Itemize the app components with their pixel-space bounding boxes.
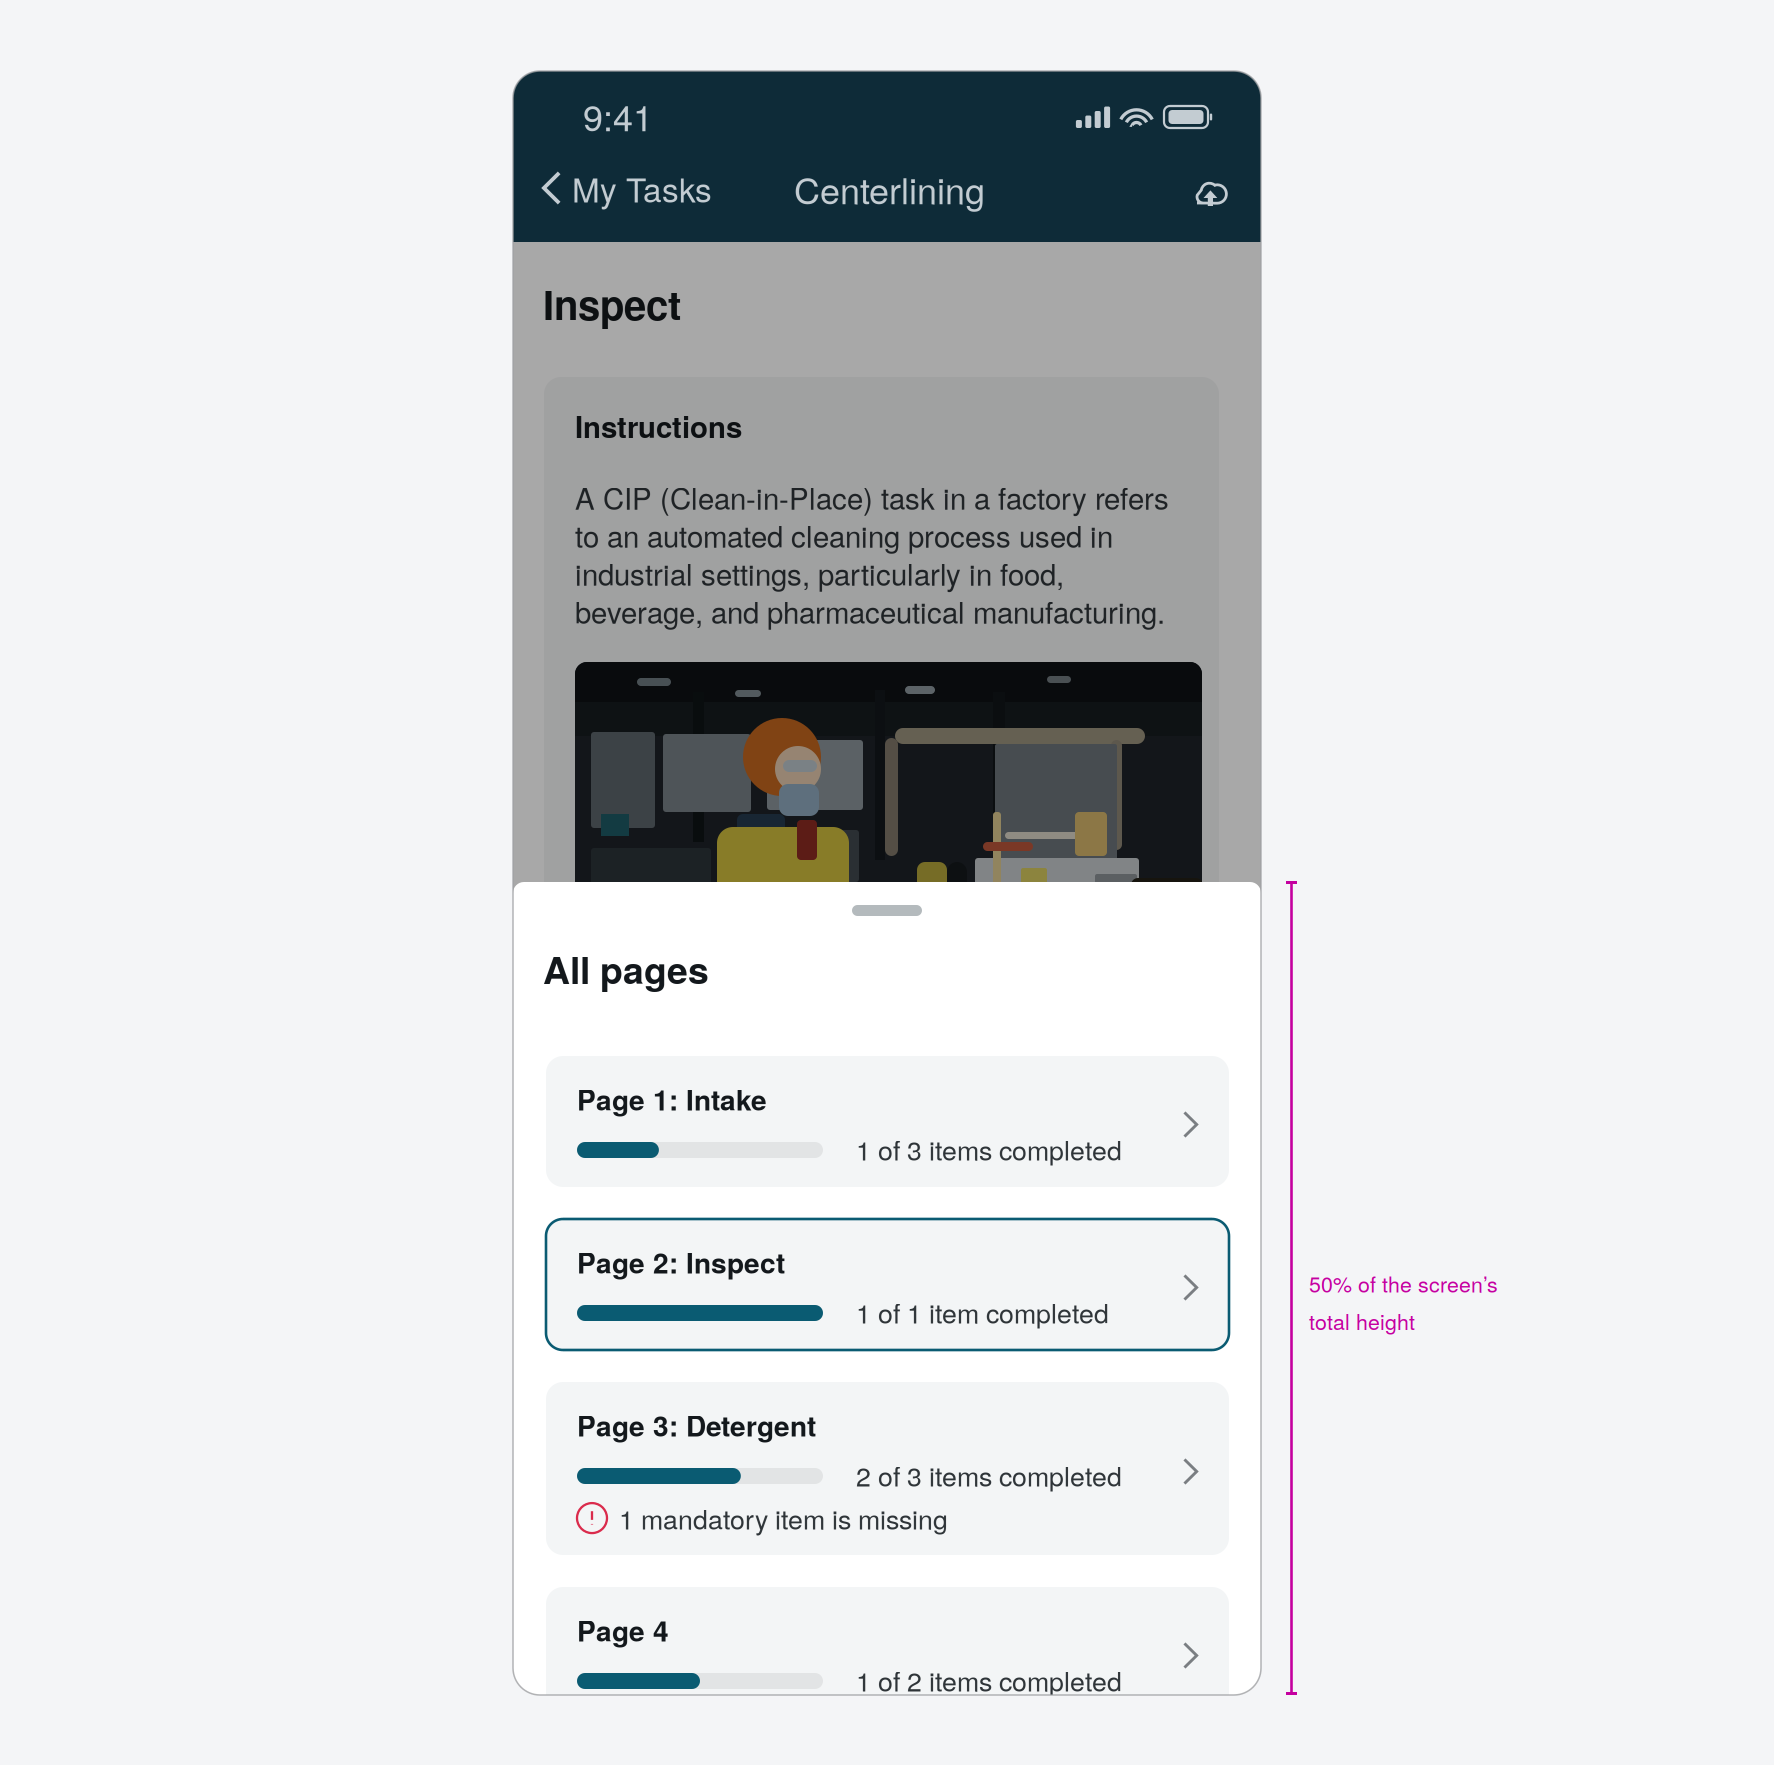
staticText: Page 4 [577, 1610, 669, 1650]
staticText: 1 of 3 items completed [856, 1130, 1122, 1168]
staticText: Inspect [543, 275, 681, 332]
button[interactable]: Centerlining [794, 163, 985, 215]
button[interactable]: Page 1: Intake [546, 1056, 1229, 1187]
staticText: 9:41 [583, 90, 653, 142]
staticText: 1 of 1 item completed [856, 1293, 1109, 1331]
staticText: Instructions [575, 405, 742, 447]
staticText: Page 1: Intake [577, 1079, 767, 1119]
button[interactable]: Page 2: Inspect [546, 1219, 1229, 1350]
button[interactable]: Upload [1194, 177, 1228, 206]
staticText: 50% of the screen’s [1309, 1268, 1498, 1298]
staticText: Page 2: Inspect [577, 1242, 785, 1282]
staticText: My Tasks [572, 164, 712, 212]
staticText: A CIP (Clean-in-Place) task in a factory… [575, 476, 1169, 632]
staticText: total height [1309, 1305, 1415, 1336]
staticText: Page 3: Detergent [577, 1405, 816, 1445]
staticText: 1 of 2 items completed [856, 1661, 1122, 1699]
button[interactable]: Page 4 [546, 1587, 1229, 1718]
staticText: 1 mandatory item is missing [619, 1499, 948, 1537]
staticText: 2 of 3 items completed [856, 1456, 1122, 1494]
button[interactable]: My Tasks [542, 164, 712, 212]
button[interactable]: Page 3: Detergent [546, 1382, 1229, 1555]
staticText: All pages [543, 942, 709, 995]
staticText: Centerlining [794, 163, 985, 215]
